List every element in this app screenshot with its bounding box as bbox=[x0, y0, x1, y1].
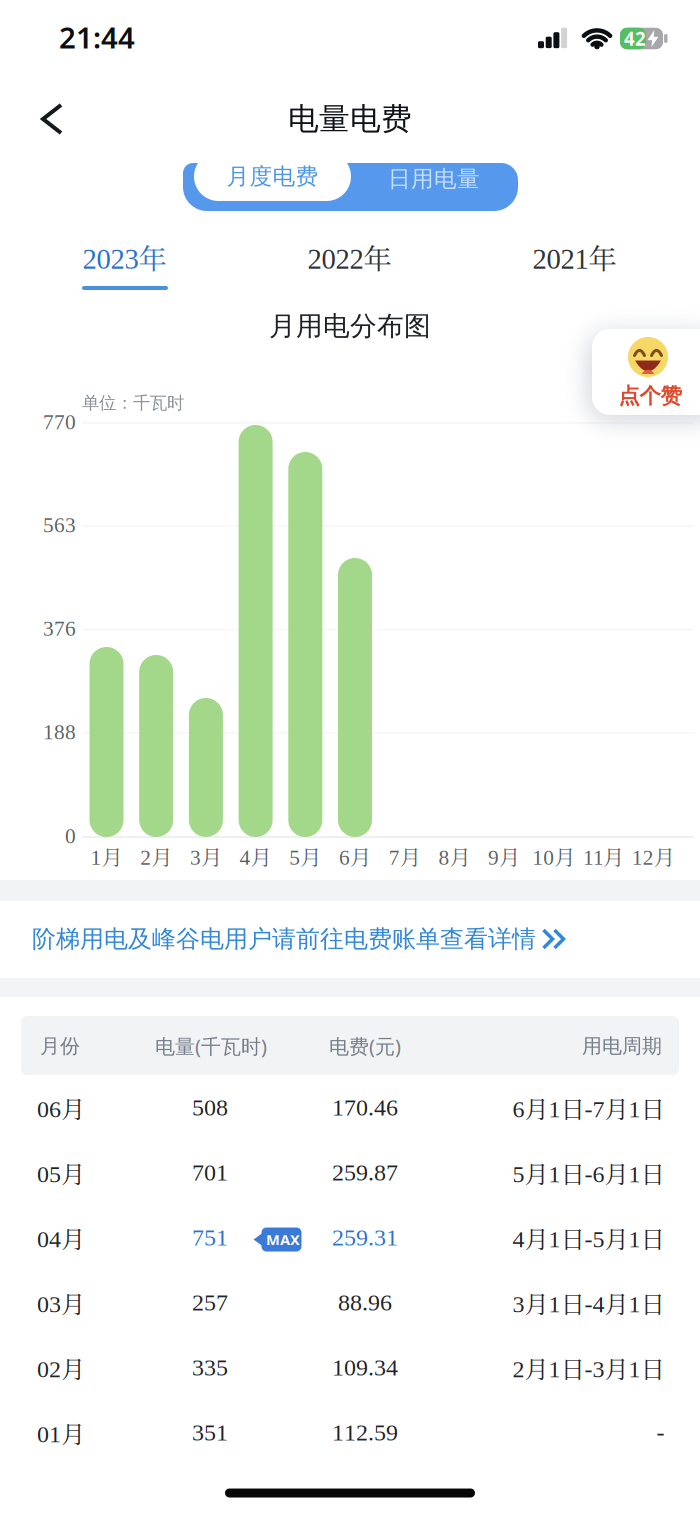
staticText: 03月 bbox=[37, 1285, 85, 1320]
staticText: 日用电量 bbox=[388, 165, 480, 193]
staticText: 点个赞 bbox=[618, 383, 681, 409]
staticText: 335 bbox=[192, 1354, 228, 1381]
staticText: 8月 bbox=[438, 841, 470, 871]
staticText: 112.59 bbox=[332, 1419, 398, 1446]
button[interactable]: 点个赞 bbox=[592, 329, 700, 415]
staticText: 月用电分布图 bbox=[269, 310, 431, 342]
staticText: 2月 bbox=[140, 841, 172, 871]
button[interactable]: 日用电量 bbox=[354, 155, 514, 203]
staticText: 05月 bbox=[37, 1155, 85, 1190]
staticText: 12月 bbox=[632, 841, 675, 871]
staticText: 188 bbox=[43, 720, 76, 744]
staticText: 2021年 bbox=[532, 236, 617, 278]
staticText: 2023年 bbox=[82, 236, 167, 278]
staticText: 电量电费 bbox=[288, 100, 412, 138]
staticText: 42 bbox=[624, 26, 646, 51]
staticText: 351 bbox=[192, 1419, 228, 1446]
staticText: 月份 bbox=[40, 1034, 80, 1058]
staticText: 06月 bbox=[37, 1090, 85, 1125]
staticText: 11月 bbox=[583, 841, 624, 871]
button[interactable]: 2022年 bbox=[280, 219, 420, 295]
staticText: 751 bbox=[192, 1224, 228, 1251]
staticText: 170.46 bbox=[332, 1094, 398, 1121]
staticText: 04月 bbox=[37, 1220, 85, 1255]
staticText: MAX bbox=[266, 1230, 300, 1249]
staticText: 563 bbox=[43, 513, 76, 537]
staticText: 508 bbox=[192, 1094, 228, 1121]
staticText: 376 bbox=[43, 617, 76, 640]
staticText: - bbox=[656, 1419, 664, 1446]
staticText: 88.96 bbox=[338, 1289, 392, 1316]
staticText: 5月1日-6月1日 bbox=[512, 1155, 664, 1190]
staticText: 1月 bbox=[90, 841, 122, 871]
staticText: 月度电费 bbox=[226, 163, 318, 190]
staticText: 阶梯用电及峰谷电用户请前往电费账单查看详情 bbox=[32, 924, 536, 954]
staticText: 0 bbox=[65, 824, 76, 848]
button[interactable]: 2021年 bbox=[505, 219, 645, 295]
staticText: 用电周期 bbox=[582, 1034, 662, 1058]
button[interactable]: 月度电费 bbox=[194, 152, 351, 201]
staticText: 2022年 bbox=[307, 236, 392, 278]
button[interactable] bbox=[43, 105, 61, 133]
staticText: 10月 bbox=[532, 841, 575, 871]
staticText: 6月 bbox=[339, 841, 371, 871]
staticText: 770 bbox=[43, 410, 76, 434]
staticText: 单位：千瓦时 bbox=[82, 392, 184, 414]
staticText: 5月 bbox=[289, 841, 321, 871]
button[interactable]: 阶梯用电及峰谷电用户请前往电费账单查看详情 bbox=[32, 924, 668, 954]
staticText: 4月 bbox=[240, 841, 272, 871]
staticText: 109.34 bbox=[332, 1354, 398, 1381]
staticText: 6月1日-7月1日 bbox=[512, 1090, 664, 1125]
staticText: 2月1日-3月1日 bbox=[512, 1350, 664, 1385]
button[interactable]: 2023年 bbox=[55, 219, 195, 295]
staticText: 3月1日-4月1日 bbox=[512, 1285, 664, 1320]
staticText: 9月 bbox=[488, 841, 520, 871]
staticText: 01月 bbox=[37, 1415, 85, 1450]
staticText: 701 bbox=[192, 1159, 228, 1186]
staticText: 259.31 bbox=[332, 1224, 398, 1251]
staticText: 259.87 bbox=[332, 1159, 398, 1186]
staticText: 21:44 bbox=[59, 17, 135, 56]
staticText: 257 bbox=[192, 1289, 228, 1316]
staticText: 3月 bbox=[190, 841, 222, 871]
staticText: 4月1日-5月1日 bbox=[512, 1220, 664, 1255]
staticText: 电量(千瓦时) bbox=[155, 1033, 267, 1059]
staticText: 02月 bbox=[37, 1350, 85, 1385]
staticText: 电费(元) bbox=[329, 1033, 401, 1059]
staticText: 7月 bbox=[389, 841, 421, 871]
